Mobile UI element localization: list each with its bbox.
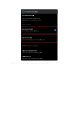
- staticText: Choose what you share with apps: [22, 39, 45, 41]
- staticText: Sync this device with iCloud: [22, 30, 39, 32]
- staticText: Delete Your Account: [22, 45, 38, 47]
- staticText: Device enabled: [22, 28, 33, 30]
- staticText: Account Settings: [24, 11, 38, 13]
- staticText: Data sharing: [22, 37, 32, 39]
- button[interactable]: Data sharing: [21, 35, 57, 43]
- staticText: Help centre: [22, 56, 31, 57]
- button[interactable]: Back: [21, 9, 24, 14]
- staticText: Account details: [22, 15, 34, 16]
- button[interactable]: Help centre: [22, 56, 43, 59]
- button[interactable]: Sign out of this device: [22, 50, 42, 53]
- staticText: Manage the information that is linked to…: [22, 17, 41, 21]
- staticText: Answers to common questions: [22, 58, 43, 59]
- button[interactable]: Device enabled: [21, 26, 57, 34]
- staticText: Learn more: [22, 23, 31, 25]
- button[interactable]: Learn more: [22, 23, 31, 25]
- staticText: You can sign back in at any time: [22, 52, 42, 53]
- staticText: Sign out of this device: [22, 50, 37, 52]
- button[interactable]: Delete Your Account: [22, 45, 38, 47]
